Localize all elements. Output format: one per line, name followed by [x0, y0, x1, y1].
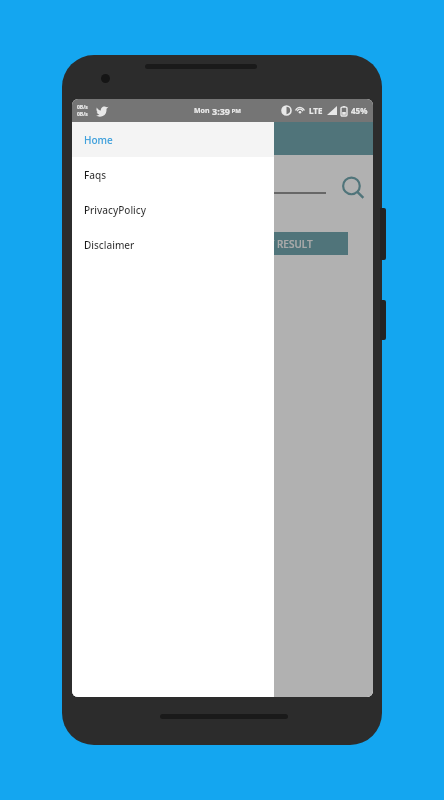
staticText: Home — [84, 133, 113, 147]
button[interactable]: Faqs — [72, 157, 274, 192]
staticText: COPY RESULT — [248, 237, 313, 251]
button[interactable]: PrivacyPolicy — [72, 192, 274, 227]
staticText: 3:39 — [212, 105, 230, 117]
staticText: 45% — [351, 105, 368, 116]
staticText: PM — [230, 107, 241, 115]
staticText: Disclaimer — [84, 238, 135, 252]
staticText: Faqs — [84, 168, 107, 182]
staticText: LTE — [309, 105, 323, 116]
button[interactable]: Disclaimer — [72, 227, 274, 262]
button[interactable]: Search — [340, 175, 366, 201]
button[interactable]: COPY RESULT — [212, 232, 348, 255]
staticText: PrivacyPolicy — [84, 203, 147, 217]
button[interactable]: Home — [72, 122, 274, 157]
staticText: 0B/s — [77, 104, 88, 111]
staticText: Mon — [194, 106, 212, 116]
staticText: 0B/s — [77, 111, 88, 118]
